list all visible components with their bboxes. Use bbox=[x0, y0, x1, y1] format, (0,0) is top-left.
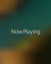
staticText: Now Playing bbox=[11, 28, 40, 35]
